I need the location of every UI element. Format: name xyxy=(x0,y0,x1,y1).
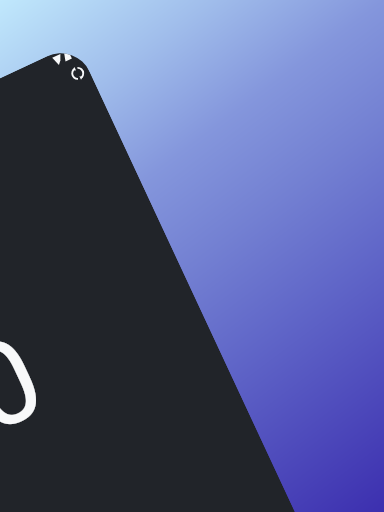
staticText: 0 xyxy=(0,308,63,459)
